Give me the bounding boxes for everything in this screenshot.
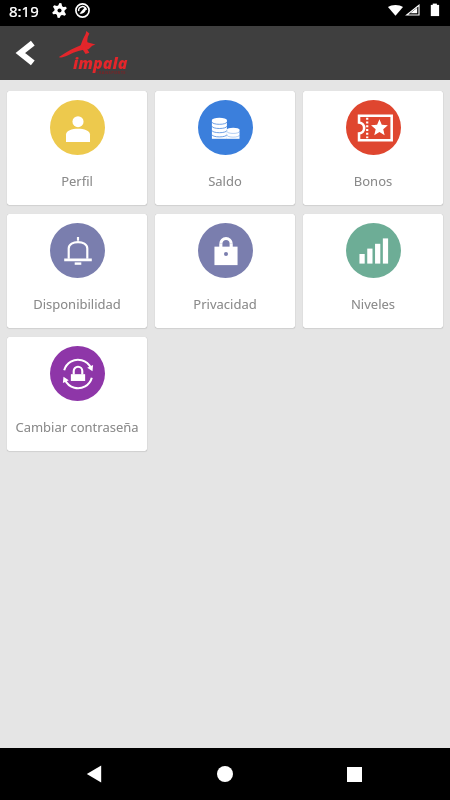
staticText: impala <box>73 52 128 74</box>
staticText: Disponibilidad <box>9 295 145 313</box>
button[interactable]: Perfil <box>7 91 147 205</box>
button[interactable]: Home <box>201 750 249 798</box>
button[interactable]: Niveles <box>303 214 443 328</box>
button[interactable]: Back <box>4 31 48 75</box>
staticText: 8:19 <box>9 1 39 21</box>
staticText: Perfil <box>9 172 145 190</box>
staticText: Saldo <box>157 172 293 190</box>
staticText: Niveles <box>305 295 441 313</box>
staticText: Cambiar contraseña <box>9 418 145 436</box>
button[interactable]: Cambiar contraseña <box>7 337 147 451</box>
button[interactable]: Disponibilidad <box>7 214 147 328</box>
button[interactable]: Saldo <box>155 91 295 205</box>
staticText: Privacidad <box>157 295 293 313</box>
staticText: TRANSPORTE <box>96 70 126 75</box>
button[interactable]: Bonos <box>303 91 443 205</box>
button[interactable]: Recents <box>330 750 378 798</box>
button[interactable]: Privacidad <box>155 214 295 328</box>
staticText: Bonos <box>305 172 441 190</box>
button[interactable]: Back <box>70 750 118 798</box>
